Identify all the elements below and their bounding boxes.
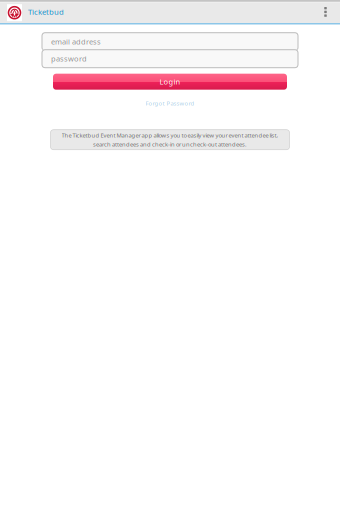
staticText: password [51, 54, 87, 64]
staticText: email address [51, 37, 101, 47]
button[interactable]: Forgot Password [145, 99, 194, 108]
button[interactable]: Login [53, 74, 287, 90]
staticText: Forgot Password [145, 99, 194, 107]
staticText: search attendees and check-in or uncheck… [93, 140, 247, 148]
button[interactable]: Ticketbud [0, 1, 72, 24]
staticText: The Ticketbud Event Manager app allows y… [61, 131, 278, 139]
staticText: Ticketbud [28, 6, 64, 17]
staticText: Login [159, 77, 180, 87]
button[interactable]: More options [314, 2, 340, 23]
